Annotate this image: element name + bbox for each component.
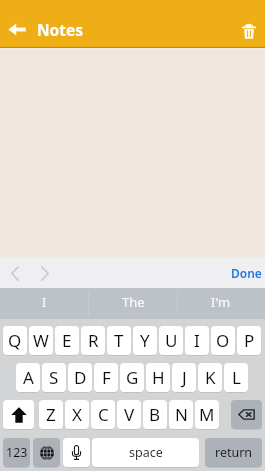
button[interactable]: Dictate xyxy=(63,438,90,467)
staticText: C xyxy=(98,403,109,426)
staticText: X xyxy=(72,403,82,426)
button[interactable]: G xyxy=(120,363,144,392)
staticText: M xyxy=(199,403,215,426)
button[interactable]: I xyxy=(0,288,89,319)
button[interactable]: P xyxy=(237,326,261,355)
staticText: G xyxy=(126,366,139,389)
button[interactable]: W xyxy=(29,326,53,355)
staticText: I'm xyxy=(211,293,231,311)
button[interactable]: M xyxy=(195,400,219,429)
staticText: U xyxy=(165,329,178,352)
button[interactable]: S xyxy=(42,363,66,392)
button[interactable]: R xyxy=(81,326,105,355)
button[interactable]: X xyxy=(65,400,89,429)
staticText: N xyxy=(175,403,188,426)
button[interactable]: Q xyxy=(3,326,27,355)
button[interactable]: H xyxy=(146,363,170,392)
button[interactable]: Done xyxy=(229,261,264,285)
button[interactable]: F xyxy=(94,363,118,392)
button[interactable]: V xyxy=(117,400,141,429)
staticText: Done xyxy=(231,265,262,281)
staticText: B xyxy=(149,403,161,426)
button[interactable]: U xyxy=(159,326,183,355)
staticText: The xyxy=(122,293,145,311)
staticText: Notes xyxy=(37,19,84,40)
staticText: P xyxy=(244,329,255,352)
button[interactable]: Previous field xyxy=(3,261,27,285)
button[interactable]: E xyxy=(55,326,79,355)
button[interactable]: The xyxy=(89,288,177,319)
staticText: I xyxy=(194,329,200,352)
button[interactable]: A xyxy=(16,363,40,392)
button[interactable]: J xyxy=(172,363,196,392)
button[interactable]: Delete note xyxy=(235,16,263,44)
button[interactable]: Return xyxy=(205,438,262,467)
button[interactable]: Shift xyxy=(3,400,34,429)
staticText: T xyxy=(114,329,124,352)
staticText: space xyxy=(129,444,163,461)
button[interactable]: I'm xyxy=(177,288,265,319)
button[interactable]: Z xyxy=(39,400,63,429)
button[interactable]: I xyxy=(185,326,209,355)
staticText: W xyxy=(33,329,49,352)
staticText: E xyxy=(62,329,72,352)
staticText: 123 xyxy=(6,444,28,461)
staticText: return xyxy=(215,444,253,461)
staticText: V xyxy=(124,403,135,426)
button[interactable]: Numbers xyxy=(3,438,30,467)
staticText: I xyxy=(42,293,47,311)
staticText: K xyxy=(205,366,216,389)
staticText: A xyxy=(23,366,34,389)
button[interactable]: Back xyxy=(2,15,31,44)
button[interactable]: C xyxy=(91,400,115,429)
staticText: Y xyxy=(140,329,150,352)
staticText: Q xyxy=(8,329,22,352)
button[interactable]: Backspace xyxy=(231,400,262,429)
button[interactable]: N xyxy=(169,400,193,429)
staticText: H xyxy=(152,366,165,389)
staticText: O xyxy=(216,329,230,352)
staticText: L xyxy=(232,366,241,389)
button[interactable]: space xyxy=(92,438,199,467)
button[interactable]: B xyxy=(143,400,167,429)
button[interactable]: Switch keyboard xyxy=(33,438,60,467)
staticText: J xyxy=(182,366,187,389)
staticText: F xyxy=(102,366,111,389)
button[interactable]: L xyxy=(224,363,248,392)
button[interactable]: K xyxy=(198,363,222,392)
button[interactable]: D xyxy=(68,363,92,392)
staticText: R xyxy=(88,329,99,352)
staticText: D xyxy=(74,366,87,389)
staticText: S xyxy=(49,366,59,389)
button[interactable]: T xyxy=(107,326,131,355)
button[interactable]: Y xyxy=(133,326,157,355)
button[interactable]: Next field xyxy=(33,261,57,285)
staticText: Z xyxy=(46,403,56,426)
button[interactable]: O xyxy=(211,326,235,355)
